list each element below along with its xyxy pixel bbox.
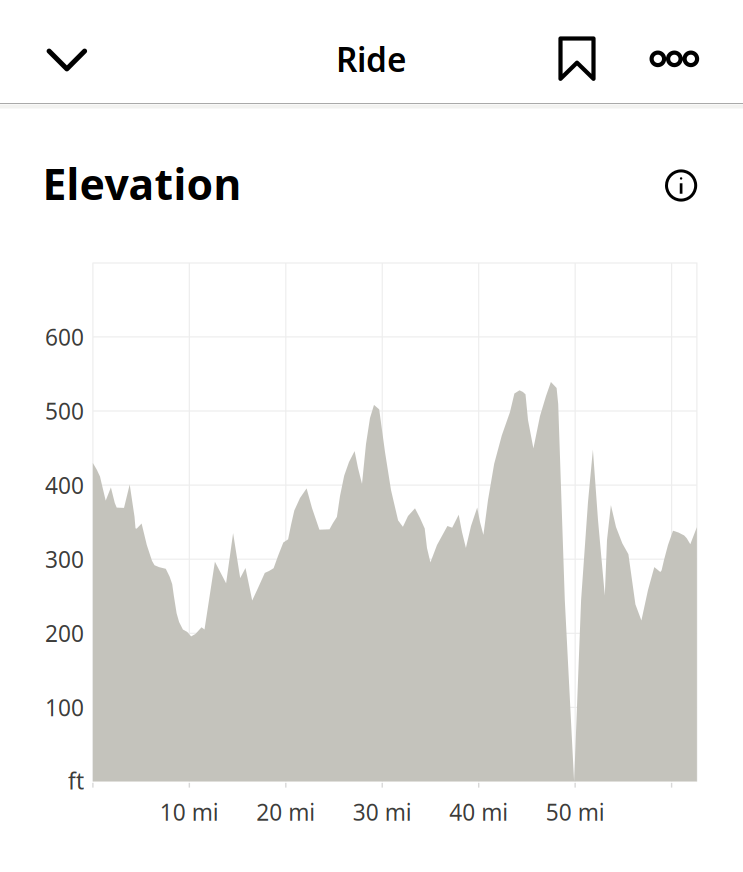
- staticText: 200: [45, 618, 84, 648]
- staticText: 100: [45, 692, 84, 722]
- staticText: 20 mi: [256, 797, 315, 827]
- staticText: 10 mi: [160, 797, 219, 827]
- staticText: 30 mi: [353, 797, 412, 827]
- staticText: 400: [45, 470, 84, 500]
- button[interactable]: Save: [538, 26, 615, 91]
- staticText: 50 mi: [546, 797, 605, 827]
- staticText: 500: [45, 396, 84, 426]
- staticText: 300: [45, 544, 84, 574]
- staticText: ft: [68, 765, 84, 796]
- button[interactable]: About elevation: [659, 163, 703, 207]
- staticText: 40 mi: [449, 797, 508, 827]
- staticText: Elevation: [42, 155, 241, 212]
- staticText: 600: [45, 322, 84, 352]
- staticText: Ride: [336, 37, 407, 81]
- button[interactable]: Collapse: [25, 31, 109, 89]
- button[interactable]: More options: [632, 29, 714, 89]
